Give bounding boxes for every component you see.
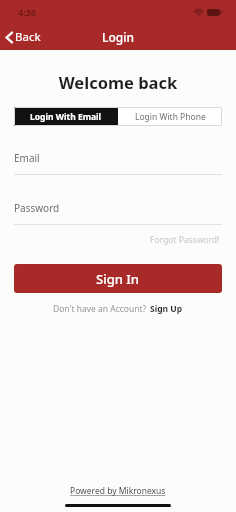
button[interactable]: Login With Phone: [118, 107, 222, 126]
button[interactable]: Login With Email: [14, 107, 118, 126]
button[interactable]: Powered by Mikronexus: [0, 485, 236, 497]
staticText: Login: [102, 29, 134, 45]
staticText: Login With Phone: [135, 111, 206, 123]
staticText: Don't have an Account?: [53, 303, 149, 315]
button[interactable]: Sign In: [14, 264, 222, 293]
button[interactable]: Forgot Password!: [148, 233, 222, 247]
staticText: 4:38: [18, 6, 36, 18]
staticText: Back: [15, 29, 41, 45]
button[interactable]: Email: [14, 151, 222, 175]
staticText: Sign In: [96, 270, 140, 288]
staticText: Email: [14, 151, 40, 165]
staticText: Sign Up: [150, 303, 183, 315]
staticText: Welcome back: [14, 71, 222, 93]
button[interactable]: Password: [14, 201, 222, 225]
staticText: Password: [14, 201, 60, 215]
staticText: Powered by Mikronexus: [70, 485, 166, 497]
button[interactable]: Back: [0, 25, 49, 49]
staticText: Login With Email: [30, 111, 102, 123]
button[interactable]: Sign Up: [149, 302, 184, 316]
